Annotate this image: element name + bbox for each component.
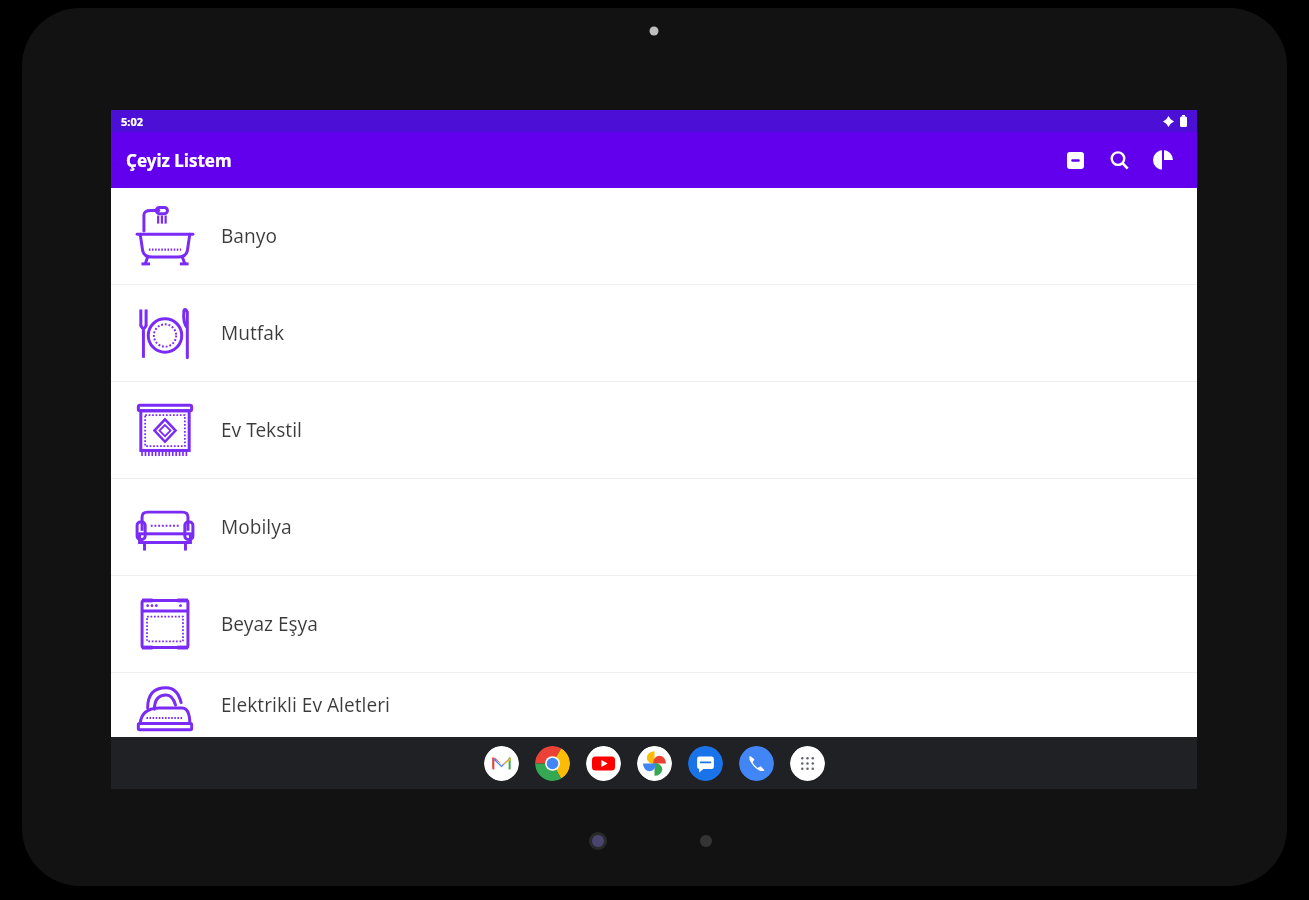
- button[interactable]: Mobilya: [111, 479, 1197, 575]
- button[interactable]: Messages: [688, 746, 723, 781]
- button[interactable]: Gmail: [484, 746, 519, 781]
- staticText: Çeyiz Listem: [126, 149, 232, 172]
- staticText: Mobilya: [221, 514, 292, 540]
- button[interactable]: Phone: [739, 746, 774, 781]
- staticText: Beyaz Eşya: [221, 611, 318, 637]
- button[interactable]: Kart görünümü: [1053, 138, 1097, 182]
- button[interactable]: Ev Tekstil: [111, 382, 1197, 478]
- staticText: Mutfak: [221, 320, 285, 346]
- button[interactable]: Ara: [1097, 138, 1141, 182]
- button[interactable]: Mutfak: [111, 285, 1197, 381]
- staticText: Banyo: [221, 223, 277, 249]
- button[interactable]: Uygulamalar: [790, 746, 825, 781]
- staticText: 5:02: [121, 114, 143, 129]
- button[interactable]: İstatistikler: [1141, 138, 1185, 182]
- button[interactable]: Banyo: [111, 188, 1197, 284]
- button[interactable]: Beyaz Eşya: [111, 576, 1197, 672]
- staticText: Ev Tekstil: [221, 417, 303, 443]
- button[interactable]: Chrome: [535, 746, 570, 781]
- button[interactable]: Photos: [637, 746, 672, 781]
- button[interactable]: Elektrikli Ev Aletleri: [111, 673, 1197, 737]
- button[interactable]: YouTube: [586, 746, 621, 781]
- staticText: Elektrikli Ev Aletleri: [221, 692, 390, 718]
